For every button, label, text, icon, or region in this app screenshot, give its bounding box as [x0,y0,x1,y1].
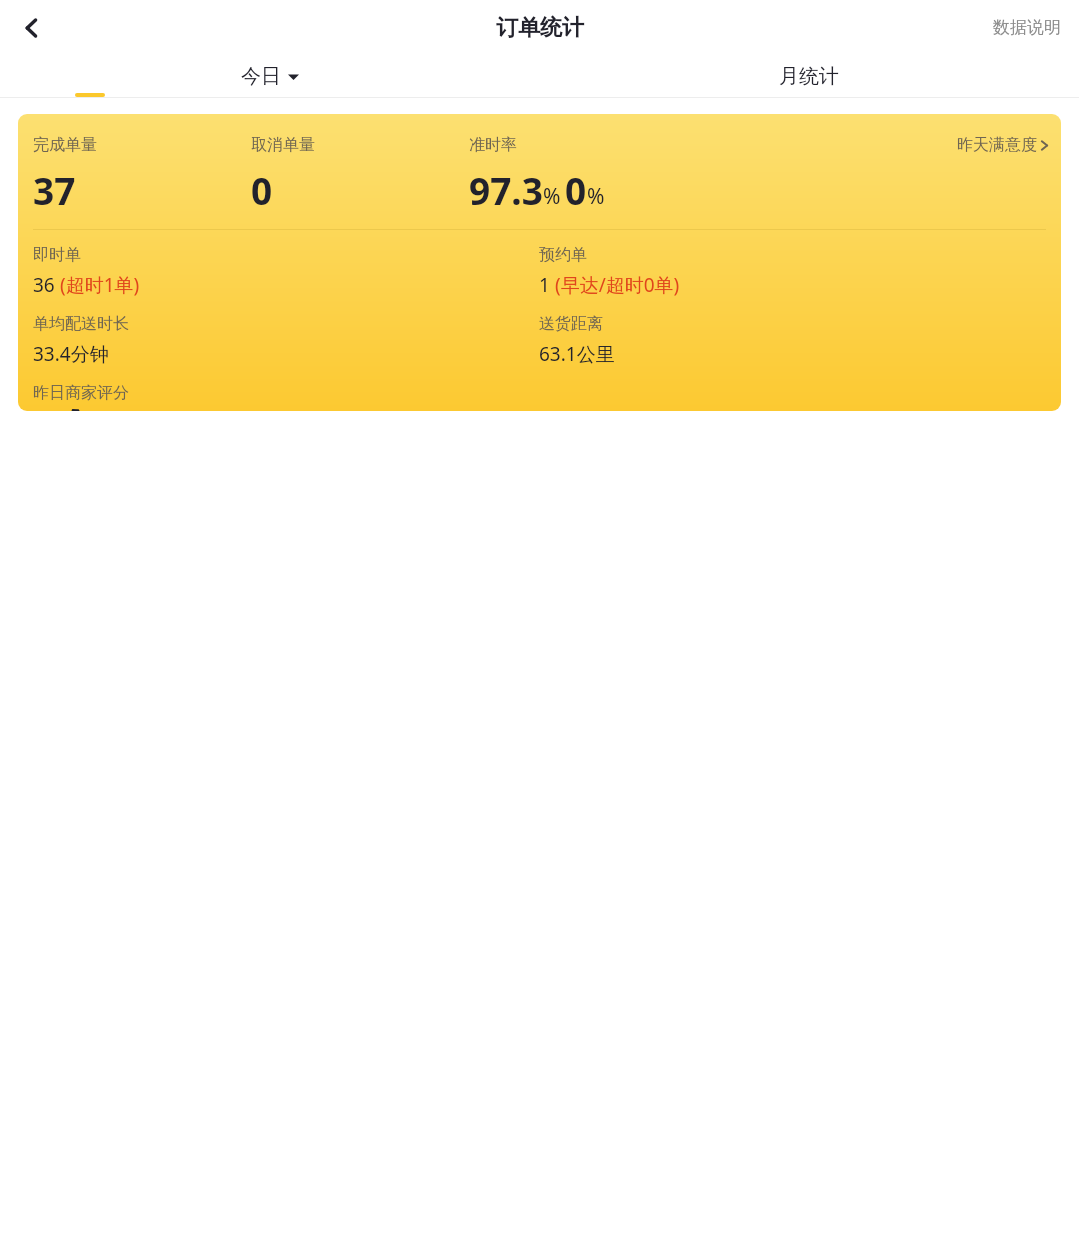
staticText: 月统计 [779,64,839,89]
staticText: 完成单量 [33,135,97,155]
staticText: 0 [565,165,587,215]
staticText: 昨天满意度 [957,135,1037,155]
button[interactable]: Back [8,4,56,52]
staticText: 1 [539,272,550,298]
button[interactable]: 数据说明 [975,7,1079,48]
staticText: 0 [251,165,273,215]
staticText: 取消单量 [251,135,315,155]
staticText: 97.3 [469,165,543,215]
staticText: 送货距离 [539,314,603,334]
staticText: (早达/超时0单) [550,272,680,298]
staticText: 36 [33,272,55,298]
staticText: 准时率 [469,135,517,155]
staticText: 37 [33,165,76,215]
button[interactable]: 月统计 [539,55,1079,97]
button[interactable]: 今日 [0,55,539,97]
staticText: 订单统计 [496,14,584,42]
staticText: 33.4分钟 [33,341,109,367]
staticText: 即时单 [33,245,81,265]
staticText: 昨日商家评分 [33,383,129,403]
staticText: 预约单 [539,245,587,265]
staticText: % [587,182,605,211]
staticText: (超时1单) [55,272,140,298]
staticText: 单均配送时长 [33,314,129,334]
staticText: 今日 [241,64,281,89]
staticText: 数据说明 [993,17,1061,38]
staticText: % [543,182,561,211]
button[interactable]: 0分 [33,410,79,411]
staticText: 63.1公里 [539,341,615,367]
button[interactable]: 完成单量 [18,114,1061,411]
